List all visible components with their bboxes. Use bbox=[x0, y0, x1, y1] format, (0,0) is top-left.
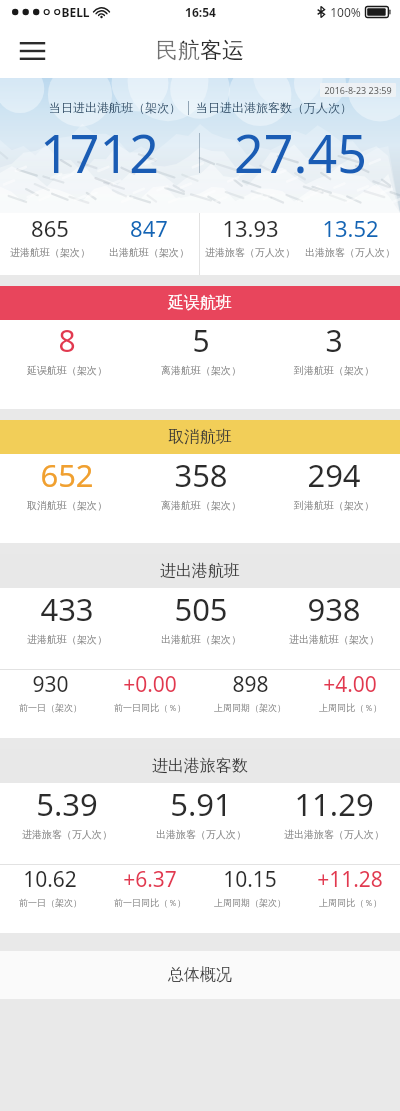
staticText: 865 bbox=[31, 213, 69, 243]
staticText: BELL bbox=[61, 4, 90, 20]
button[interactable]: 5 bbox=[134, 320, 267, 377]
staticText: 进出港旅客数 bbox=[152, 756, 248, 776]
button[interactable]: 938 bbox=[267, 588, 400, 646]
staticText: 进港旅客（万人次） bbox=[22, 828, 112, 841]
staticText: 前一日同比（％） bbox=[114, 897, 186, 908]
staticText: 上周同比（％） bbox=[319, 897, 382, 908]
staticText: 13.52 bbox=[322, 213, 379, 243]
staticText: 进港旅客（万人次） bbox=[205, 246, 295, 259]
button[interactable]: +11.28 bbox=[300, 865, 400, 908]
button[interactable]: 2016-8-23 23:59 bbox=[0, 78, 400, 213]
button[interactable]: 930 bbox=[0, 670, 100, 713]
button[interactable]: 13.93 bbox=[200, 213, 300, 259]
staticText: 前一日（架次） bbox=[19, 702, 82, 713]
staticText: 离港航班（架次） bbox=[161, 364, 241, 377]
staticText: 8 bbox=[58, 320, 76, 361]
button[interactable]: 11.29 bbox=[267, 783, 400, 841]
staticText: 取消航班 bbox=[168, 427, 232, 447]
button[interactable]: 进出港航班 bbox=[0, 554, 400, 588]
staticText: 进港航班（架次） bbox=[10, 246, 90, 259]
staticText: 进出港航班 bbox=[160, 561, 240, 581]
staticText: +4.00 bbox=[323, 670, 377, 699]
button[interactable]: 总体概况 bbox=[0, 951, 400, 999]
staticText: 到港航班（架次） bbox=[294, 499, 374, 512]
staticText: 前一日（架次） bbox=[19, 897, 82, 908]
staticText: 延误航班 bbox=[168, 293, 232, 313]
staticText: 上周同期（架次） bbox=[214, 702, 286, 713]
button[interactable]: 898 bbox=[200, 670, 300, 713]
staticText: 出港旅客（万人次） bbox=[305, 246, 395, 259]
staticText: 取消航班（架次） bbox=[27, 499, 107, 512]
button[interactable]: 进出港旅客数 bbox=[0, 749, 400, 783]
button[interactable]: 5.91 bbox=[134, 783, 267, 841]
staticText: 总体概况 bbox=[168, 965, 232, 985]
button[interactable]: 847 bbox=[99, 213, 199, 259]
staticText: 进出港航班（架次） bbox=[289, 633, 379, 646]
staticText: 13.93 bbox=[222, 213, 279, 243]
button[interactable]: 取消航班 bbox=[0, 420, 400, 454]
staticText: +11.28 bbox=[317, 865, 383, 894]
staticText: 938 bbox=[307, 588, 361, 630]
button[interactable]: 294 bbox=[267, 454, 400, 512]
button[interactable]: 3 bbox=[267, 320, 400, 377]
staticText: 847 bbox=[130, 213, 168, 243]
button[interactable]: 延误航班 bbox=[0, 286, 400, 320]
staticText: 930 bbox=[32, 670, 69, 699]
staticText: 上周同期（架次） bbox=[214, 897, 286, 908]
staticText: 5 bbox=[192, 320, 210, 361]
staticText: 100% bbox=[330, 4, 361, 20]
staticText: 出港航班（架次） bbox=[109, 246, 189, 259]
staticText: 前一日同比（％） bbox=[114, 702, 186, 713]
staticText: 延误航班（架次） bbox=[27, 364, 107, 377]
button[interactable]: +6.37 bbox=[100, 865, 200, 908]
staticText: 民航客运 bbox=[156, 37, 244, 65]
staticText: 进港航班（架次） bbox=[27, 633, 107, 646]
staticText: 16:54 bbox=[185, 4, 216, 20]
button[interactable]: 865 bbox=[0, 213, 99, 259]
staticText: 898 bbox=[232, 670, 269, 699]
staticText: 进出港旅客（万人次） bbox=[284, 828, 384, 841]
staticText: 2016-8-23 23:59 bbox=[324, 84, 392, 96]
staticText: +6.37 bbox=[123, 865, 177, 894]
button[interactable]: 10.15 bbox=[200, 865, 300, 908]
staticText: 出港航班（架次） bbox=[161, 633, 241, 646]
staticText: +0.00 bbox=[123, 670, 177, 699]
staticText: 27.45 bbox=[234, 117, 367, 188]
staticText: 358 bbox=[174, 454, 228, 496]
staticText: 离港航班（架次） bbox=[161, 499, 241, 512]
staticText: 652 bbox=[40, 454, 94, 496]
staticText: 11.29 bbox=[294, 783, 374, 825]
button[interactable]: Menu bbox=[10, 29, 54, 73]
staticText: 433 bbox=[40, 588, 94, 630]
staticText: 当日进出港旅客数（万人次） bbox=[196, 100, 352, 115]
staticText: 10.62 bbox=[23, 865, 77, 894]
staticText: 上周同比（％） bbox=[319, 702, 382, 713]
button[interactable]: 8 bbox=[0, 320, 134, 377]
button[interactable]: 433 bbox=[0, 588, 134, 646]
staticText: 3 bbox=[325, 320, 343, 361]
staticText: 294 bbox=[307, 454, 361, 496]
button[interactable]: 358 bbox=[134, 454, 267, 512]
button[interactable]: 505 bbox=[134, 588, 267, 646]
staticText: 5.91 bbox=[170, 783, 232, 825]
staticText: 505 bbox=[174, 588, 228, 630]
button[interactable]: 652 bbox=[0, 454, 134, 512]
button[interactable]: +4.00 bbox=[300, 670, 400, 713]
button[interactable]: 5.39 bbox=[0, 783, 134, 841]
button[interactable]: +0.00 bbox=[100, 670, 200, 713]
staticText: 10.15 bbox=[223, 865, 277, 894]
button[interactable]: 10.62 bbox=[0, 865, 100, 908]
staticText: 出港旅客（万人次） bbox=[156, 828, 246, 841]
staticText: 5.39 bbox=[36, 783, 98, 825]
staticText: 到港航班（架次） bbox=[294, 364, 374, 377]
staticText: 1712 bbox=[40, 117, 159, 188]
button[interactable]: 13.52 bbox=[300, 213, 400, 259]
staticText: 当日进出港航班（架次） bbox=[49, 100, 181, 115]
